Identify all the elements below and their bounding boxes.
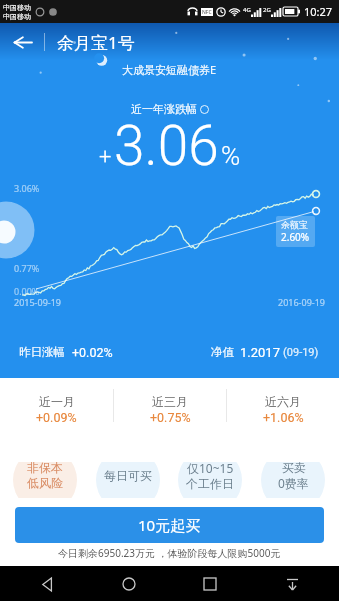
staticText: 0费率 <box>278 475 309 491</box>
staticText: 仅10~15 <box>187 462 234 476</box>
button[interactable]: 近一月 <box>0 378 113 433</box>
staticText: 余额宝 <box>281 219 308 230</box>
staticText: NFC <box>202 9 212 16</box>
staticText: 中国移动 <box>3 3 31 12</box>
staticText: (09-19) <box>283 346 319 359</box>
staticText: 大成景安短融债券E <box>122 62 217 77</box>
staticText: 近六月 <box>265 394 301 409</box>
staticText: 近一年涨跌幅 <box>131 102 197 116</box>
button[interactable]: 买卖 <box>261 462 325 498</box>
button[interactable]: 近三月 <box>114 378 226 433</box>
staticText: 0.77% <box>14 262 40 274</box>
staticText: 1.2017 <box>240 345 280 360</box>
button[interactable]: Recent apps <box>193 567 227 601</box>
staticText: 10:27 <box>304 4 333 19</box>
staticText: 近一月 <box>39 394 75 409</box>
staticText: 昨日涨幅 <box>19 345 65 359</box>
button[interactable]: 非保本 <box>13 462 77 498</box>
button[interactable]: 近六月 <box>227 378 339 433</box>
staticText: 3.06% <box>14 182 40 194</box>
staticText: 个工作日 <box>186 476 234 491</box>
staticText: 买卖 <box>282 462 306 475</box>
staticText: +0.09% <box>36 410 77 425</box>
staticText: 每日可买 <box>104 468 152 483</box>
staticText: 低风险 <box>27 475 63 490</box>
staticText: 3.06 <box>114 114 219 178</box>
staticText: 4G <box>243 6 251 14</box>
staticText: 0.00% <box>14 285 40 297</box>
button[interactable]: Back <box>30 567 64 601</box>
button[interactable]: 每日可买 <box>96 462 160 498</box>
staticText: 2016-09-19 <box>278 296 325 308</box>
staticText: 今日剩余6950.23万元 ，体验阶段每人限购5000元 <box>58 546 281 560</box>
button[interactable]: Back <box>0 23 44 61</box>
staticText: 中国移动 <box>3 12 31 21</box>
staticText: 余月宝1号 <box>57 31 135 54</box>
staticText: 2.60% <box>281 230 310 244</box>
staticText: + <box>99 144 112 170</box>
staticText: 2G <box>263 6 271 14</box>
button[interactable]: Hide navigation bar <box>275 567 309 601</box>
button[interactable]: 仅10~15 <box>178 462 242 498</box>
staticText: 近三月 <box>152 394 188 409</box>
staticText: 非保本 <box>27 462 63 475</box>
staticText: 10元起买 <box>138 515 201 535</box>
staticText: +1.06% <box>263 410 304 425</box>
staticText: 净值 <box>211 345 234 359</box>
staticText: 2015-09-19 <box>14 296 61 308</box>
staticText: +0.75% <box>150 410 191 425</box>
staticText: +0.02% <box>72 345 113 360</box>
button[interactable]: 10元起买 <box>15 507 324 543</box>
button[interactable]: Home <box>112 567 146 601</box>
staticText: % <box>221 141 241 171</box>
